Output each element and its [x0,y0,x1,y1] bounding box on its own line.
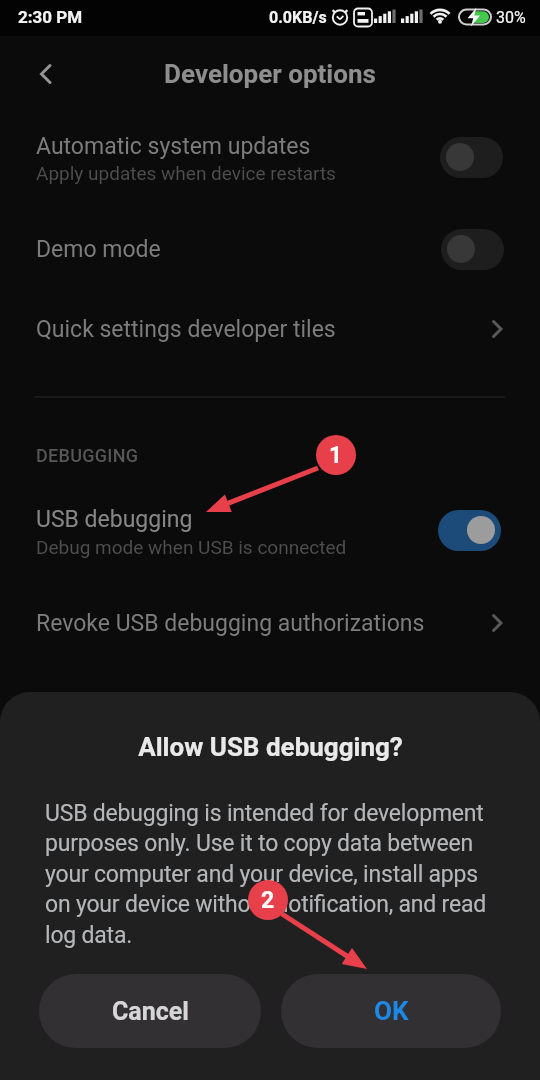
button[interactable] [37,64,55,84]
button[interactable]: 2 [248,880,288,920]
staticText: Quick settings developer tiles [36,316,336,343]
button[interactable] [440,137,503,178]
staticText: DEBUGGING [36,445,139,466]
staticText: on your device without notification, and… [45,891,487,918]
button[interactable] [0,215,540,283]
staticText: 30% [496,8,526,27]
staticText: 2 [261,887,275,914]
staticText: Developer options [164,59,376,89]
button[interactable] [0,493,540,571]
staticText: Automatic system updates [36,133,311,160]
button[interactable]: Cancel [39,974,261,1048]
button[interactable]: 1 [316,435,356,475]
staticText: log data. [45,922,133,949]
staticText: Allow USB debugging? [138,732,403,762]
staticText: 0.0KB/s [269,8,327,27]
button[interactable] [0,295,540,363]
staticText: Revoke USB debugging authorizations [36,610,425,637]
button[interactable] [441,229,504,270]
button[interactable]: OK [281,974,501,1048]
staticText: your computer and your device, install a… [45,861,478,888]
staticText: Cancel [112,997,189,1026]
staticText: purposes only. Use it to copy data betwe… [45,830,473,857]
button[interactable] [0,120,540,198]
staticText: USB debugging [36,506,193,533]
button[interactable] [438,510,501,551]
button[interactable] [0,590,540,658]
staticText: USB debugging is intended for developmen… [45,800,484,827]
staticText: 1 [329,442,343,469]
staticText: Apply updates when device restarts [36,162,336,184]
staticText: Debug mode when USB is connected [36,536,347,558]
staticText: 2:30 PM [18,7,83,27]
staticText: Demo mode [36,236,161,263]
staticText: OK [374,996,409,1026]
